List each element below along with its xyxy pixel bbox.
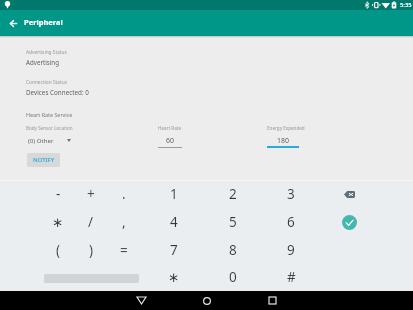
button[interactable]: ) [75,236,107,264]
staticText: , [122,213,126,231]
staticText: Heart Rate Service [26,111,73,118]
button[interactable]: 5 [217,208,249,236]
button[interactable]: 8 [217,236,249,264]
staticText: (0) Other [28,136,54,144]
staticText: / [88,213,94,231]
staticText: Devices Connected: 0 [26,88,89,97]
staticText: 4 [170,213,178,231]
button[interactable]: Backspace [333,180,365,208]
button[interactable]: = [108,236,140,264]
button[interactable]: 60 [158,134,182,148]
staticText: Advertising [26,58,59,66]
staticText: Connection Status [26,79,68,86]
staticText: ) [89,241,94,259]
button[interactable]: 7 [158,236,190,264]
staticText: + [87,185,95,203]
button[interactable]: 180 [267,134,299,148]
staticText: ∗ [52,214,64,230]
staticText: 2 [229,185,237,203]
staticText: 8 [229,241,237,259]
staticText: = [120,241,128,259]
button[interactable]: 0 [217,263,249,291]
button[interactable]: / [75,208,107,236]
button[interactable]: Home [196,291,218,310]
staticText: Body Sensor Location [26,125,73,131]
staticText: ∗ [168,269,180,285]
button[interactable]: ∗ [158,263,190,291]
button[interactable]: , [108,208,140,236]
button[interactable]: # [275,263,307,291]
staticText: 7 [170,241,178,259]
button[interactable]: 2 [217,180,249,208]
staticText: ( [56,241,61,259]
staticText: Heart Rate [158,125,182,131]
button[interactable]: - [42,180,74,208]
staticText: 0 [229,268,237,286]
staticText: Energy Expended [267,125,305,131]
staticText: 180 [277,136,290,146]
button[interactable]: 9 [275,236,307,264]
staticText: # [287,268,296,286]
button[interactable]: ∗ [42,208,74,236]
button[interactable]: 1 [158,180,190,208]
staticText: 5 [229,213,237,231]
button[interactable]: Recent apps [261,291,283,310]
button[interactable]: + [75,180,107,208]
staticText: Peripheral [24,17,63,27]
staticText: 1 [170,185,178,203]
staticText: 60 [166,136,175,146]
button[interactable]: Back [130,291,152,310]
button[interactable]: 6 [275,208,307,236]
staticText: 6 [287,213,295,231]
button[interactable]: 3 [275,180,307,208]
button[interactable]: (0) Other [26,133,76,147]
button[interactable]: Navigate up [6,16,21,31]
button[interactable]: 4 [158,208,190,236]
button[interactable]: . [108,180,140,208]
staticText: Advertising Status [26,49,67,56]
staticText: . [122,185,126,203]
staticText: NOTIFY [33,156,55,164]
button[interactable]: ( [42,236,74,264]
button[interactable]: NOTIFY [27,153,60,167]
staticText: 3 [287,185,295,203]
staticText: 9 [287,241,295,259]
staticText: 5:35 [400,1,412,9]
staticText: - [56,185,61,203]
button[interactable]: Enter [333,208,365,236]
